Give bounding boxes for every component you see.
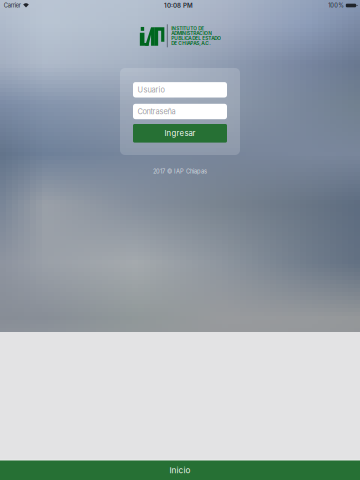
staticText: Usuario: [137, 85, 164, 94]
staticText: Contraseña: [137, 107, 175, 116]
button[interactable]: Inicio: [0, 460, 360, 480]
staticText: DE CHIAPAS, A.C.: [171, 40, 211, 46]
staticText: ADMINISTRACIÓN: [171, 30, 212, 36]
button[interactable]: Contraseña: [133, 104, 227, 119]
staticText: 10:08 PM: [164, 2, 193, 9]
button[interactable]: Ingresar: [133, 124, 227, 143]
staticText: INSTITUTO DE: [171, 25, 204, 31]
staticText: Inicio: [169, 465, 190, 475]
staticText: PÚBLICA DEL ESTADO: [171, 35, 221, 41]
staticText: Carrier: [4, 2, 21, 9]
staticText: 100%: [328, 2, 344, 9]
staticText: Ingresar: [164, 129, 195, 138]
staticText: 2017 © IAP Chiapas: [153, 168, 207, 175]
button[interactable]: Usuario: [133, 82, 227, 97]
